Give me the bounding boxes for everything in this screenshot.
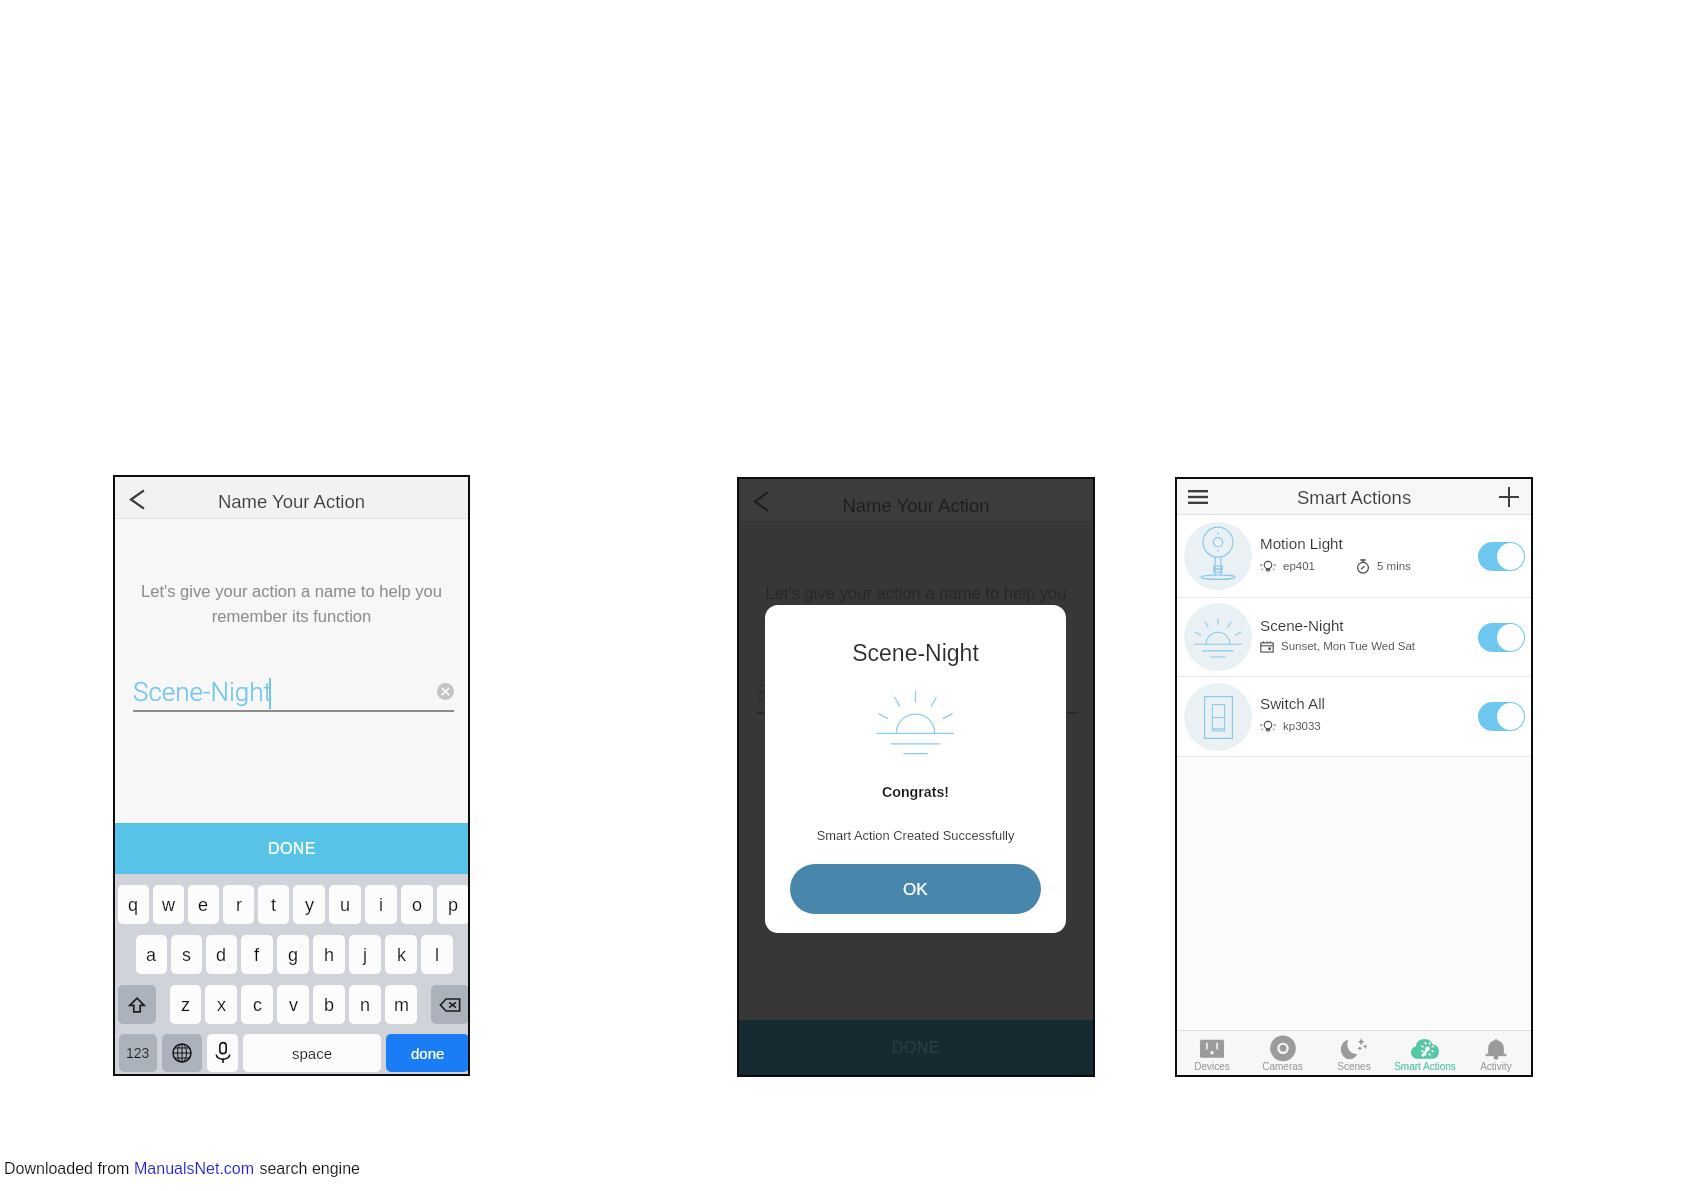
staticText: s	[182, 945, 191, 965]
staticText: i	[379, 895, 383, 915]
staticText: l	[435, 945, 439, 965]
button[interactable]: Backspace	[431, 985, 469, 1024]
staticText: f	[254, 945, 260, 965]
button[interactable]: x	[205, 985, 237, 1024]
button[interactable]: o	[401, 885, 433, 924]
staticText: Devices	[1194, 1061, 1230, 1072]
button[interactable]: v	[277, 985, 309, 1024]
staticText: t	[271, 895, 277, 915]
button[interactable]: Change keyboard	[162, 1034, 202, 1072]
staticText: d	[216, 945, 227, 965]
staticText: Downloaded from	[4, 1160, 134, 1178]
button[interactable]: d	[206, 935, 237, 974]
button[interactable]: Devices	[1177, 1031, 1247, 1075]
button[interactable]: Toggle Scene-Night	[1478, 623, 1525, 652]
staticText: Switch All	[1260, 695, 1325, 712]
staticText: u	[340, 895, 351, 915]
staticText: Scene-Night	[757, 679, 896, 709]
staticText: w	[162, 895, 175, 915]
staticText: k	[397, 945, 406, 965]
button[interactable]: Toggle Motion Light	[1478, 542, 1525, 571]
staticText: Sunset, Mon Tue Wed Sat	[1281, 640, 1416, 653]
staticText: y	[305, 895, 314, 915]
button[interactable]: Cameras	[1247, 1031, 1318, 1075]
staticText: x	[217, 995, 226, 1015]
staticText: v	[289, 995, 298, 1015]
staticText: q	[128, 895, 139, 915]
button[interactable]: j	[349, 935, 381, 974]
button[interactable]: a	[136, 935, 167, 974]
button[interactable]: e	[188, 885, 219, 924]
button[interactable]: l	[421, 935, 453, 974]
staticText: e	[198, 895, 209, 915]
staticText: search engine	[255, 1160, 360, 1178]
staticText: h	[324, 945, 335, 965]
staticText: Let's give your action a name to help yo…	[739, 584, 1093, 628]
staticText: 5 mins	[1377, 560, 1411, 573]
button[interactable]: z	[170, 985, 201, 1024]
staticText: Scenes	[1337, 1061, 1371, 1072]
button[interactable]: Add	[1492, 479, 1526, 515]
button[interactable]: Shift	[118, 985, 156, 1024]
staticText: c	[253, 995, 262, 1015]
button[interactable]: done	[386, 1034, 469, 1072]
button[interactable]: p	[437, 885, 469, 924]
button[interactable]: n	[349, 985, 381, 1024]
button[interactable]: Switch All	[1177, 677, 1531, 756]
button[interactable]: Dictate	[207, 1034, 238, 1072]
button[interactable]: u	[329, 885, 361, 924]
staticText: DONE	[892, 1039, 940, 1057]
staticText: Scene-Night	[765, 640, 1066, 666]
button[interactable]: space	[243, 1034, 381, 1072]
button[interactable]: Scenes	[1318, 1031, 1389, 1075]
staticText: b	[324, 995, 335, 1015]
staticText: a	[146, 945, 157, 965]
button[interactable]: b	[313, 985, 345, 1024]
staticText: Activity	[1480, 1061, 1512, 1072]
staticText: p	[448, 895, 459, 915]
button[interactable]: Motion Light	[1177, 515, 1531, 597]
staticText: r	[236, 895, 242, 915]
button[interactable]: OK	[790, 864, 1041, 914]
staticText: z	[181, 995, 190, 1015]
button[interactable]: Back	[124, 488, 150, 510]
staticText: OK	[903, 880, 928, 899]
button[interactable]: Back	[748, 490, 774, 512]
staticText: ep401	[1283, 560, 1315, 573]
button[interactable]: y	[293, 885, 325, 924]
button[interactable]: q	[118, 885, 149, 924]
button[interactable]: s	[171, 935, 202, 974]
staticText: m	[394, 995, 409, 1015]
staticText: Congrats!	[765, 784, 1066, 800]
staticText: Name Your Action	[739, 495, 1093, 516]
staticText: space	[292, 1045, 333, 1062]
button[interactable]: Clear text	[437, 683, 454, 700]
staticText: n	[360, 995, 371, 1015]
button[interactable]: Menu	[1181, 479, 1215, 515]
button[interactable]: Smart Actions	[1389, 1031, 1460, 1075]
staticText: Scene-Night	[133, 677, 272, 707]
button[interactable]: f	[241, 935, 273, 974]
button[interactable]: w	[153, 885, 184, 924]
staticText: Motion Light	[1260, 535, 1343, 552]
staticText: Smart Actions	[1394, 1061, 1456, 1072]
staticText: 123	[126, 1045, 150, 1061]
staticText: kp3033	[1283, 720, 1321, 733]
button[interactable]: r	[223, 885, 254, 924]
staticText: Name Your Action	[115, 491, 468, 512]
button[interactable]: Activity	[1460, 1031, 1531, 1075]
button[interactable]: Toggle Switch All	[1478, 702, 1525, 731]
button[interactable]: i	[365, 885, 397, 924]
staticText: Smart Actions	[1297, 487, 1412, 508]
button[interactable]: t	[258, 885, 289, 924]
staticText: done	[411, 1045, 445, 1062]
button[interactable]: c	[241, 985, 273, 1024]
button[interactable]: 123	[119, 1034, 157, 1072]
staticText: Cameras	[1262, 1061, 1303, 1072]
button[interactable]: k	[385, 935, 417, 974]
button[interactable]: m	[385, 985, 417, 1024]
button[interactable]: Scene-Night	[1177, 598, 1531, 676]
button[interactable]: h	[313, 935, 345, 974]
button[interactable]: g	[277, 935, 309, 974]
button[interactable]: DONE	[115, 823, 468, 874]
